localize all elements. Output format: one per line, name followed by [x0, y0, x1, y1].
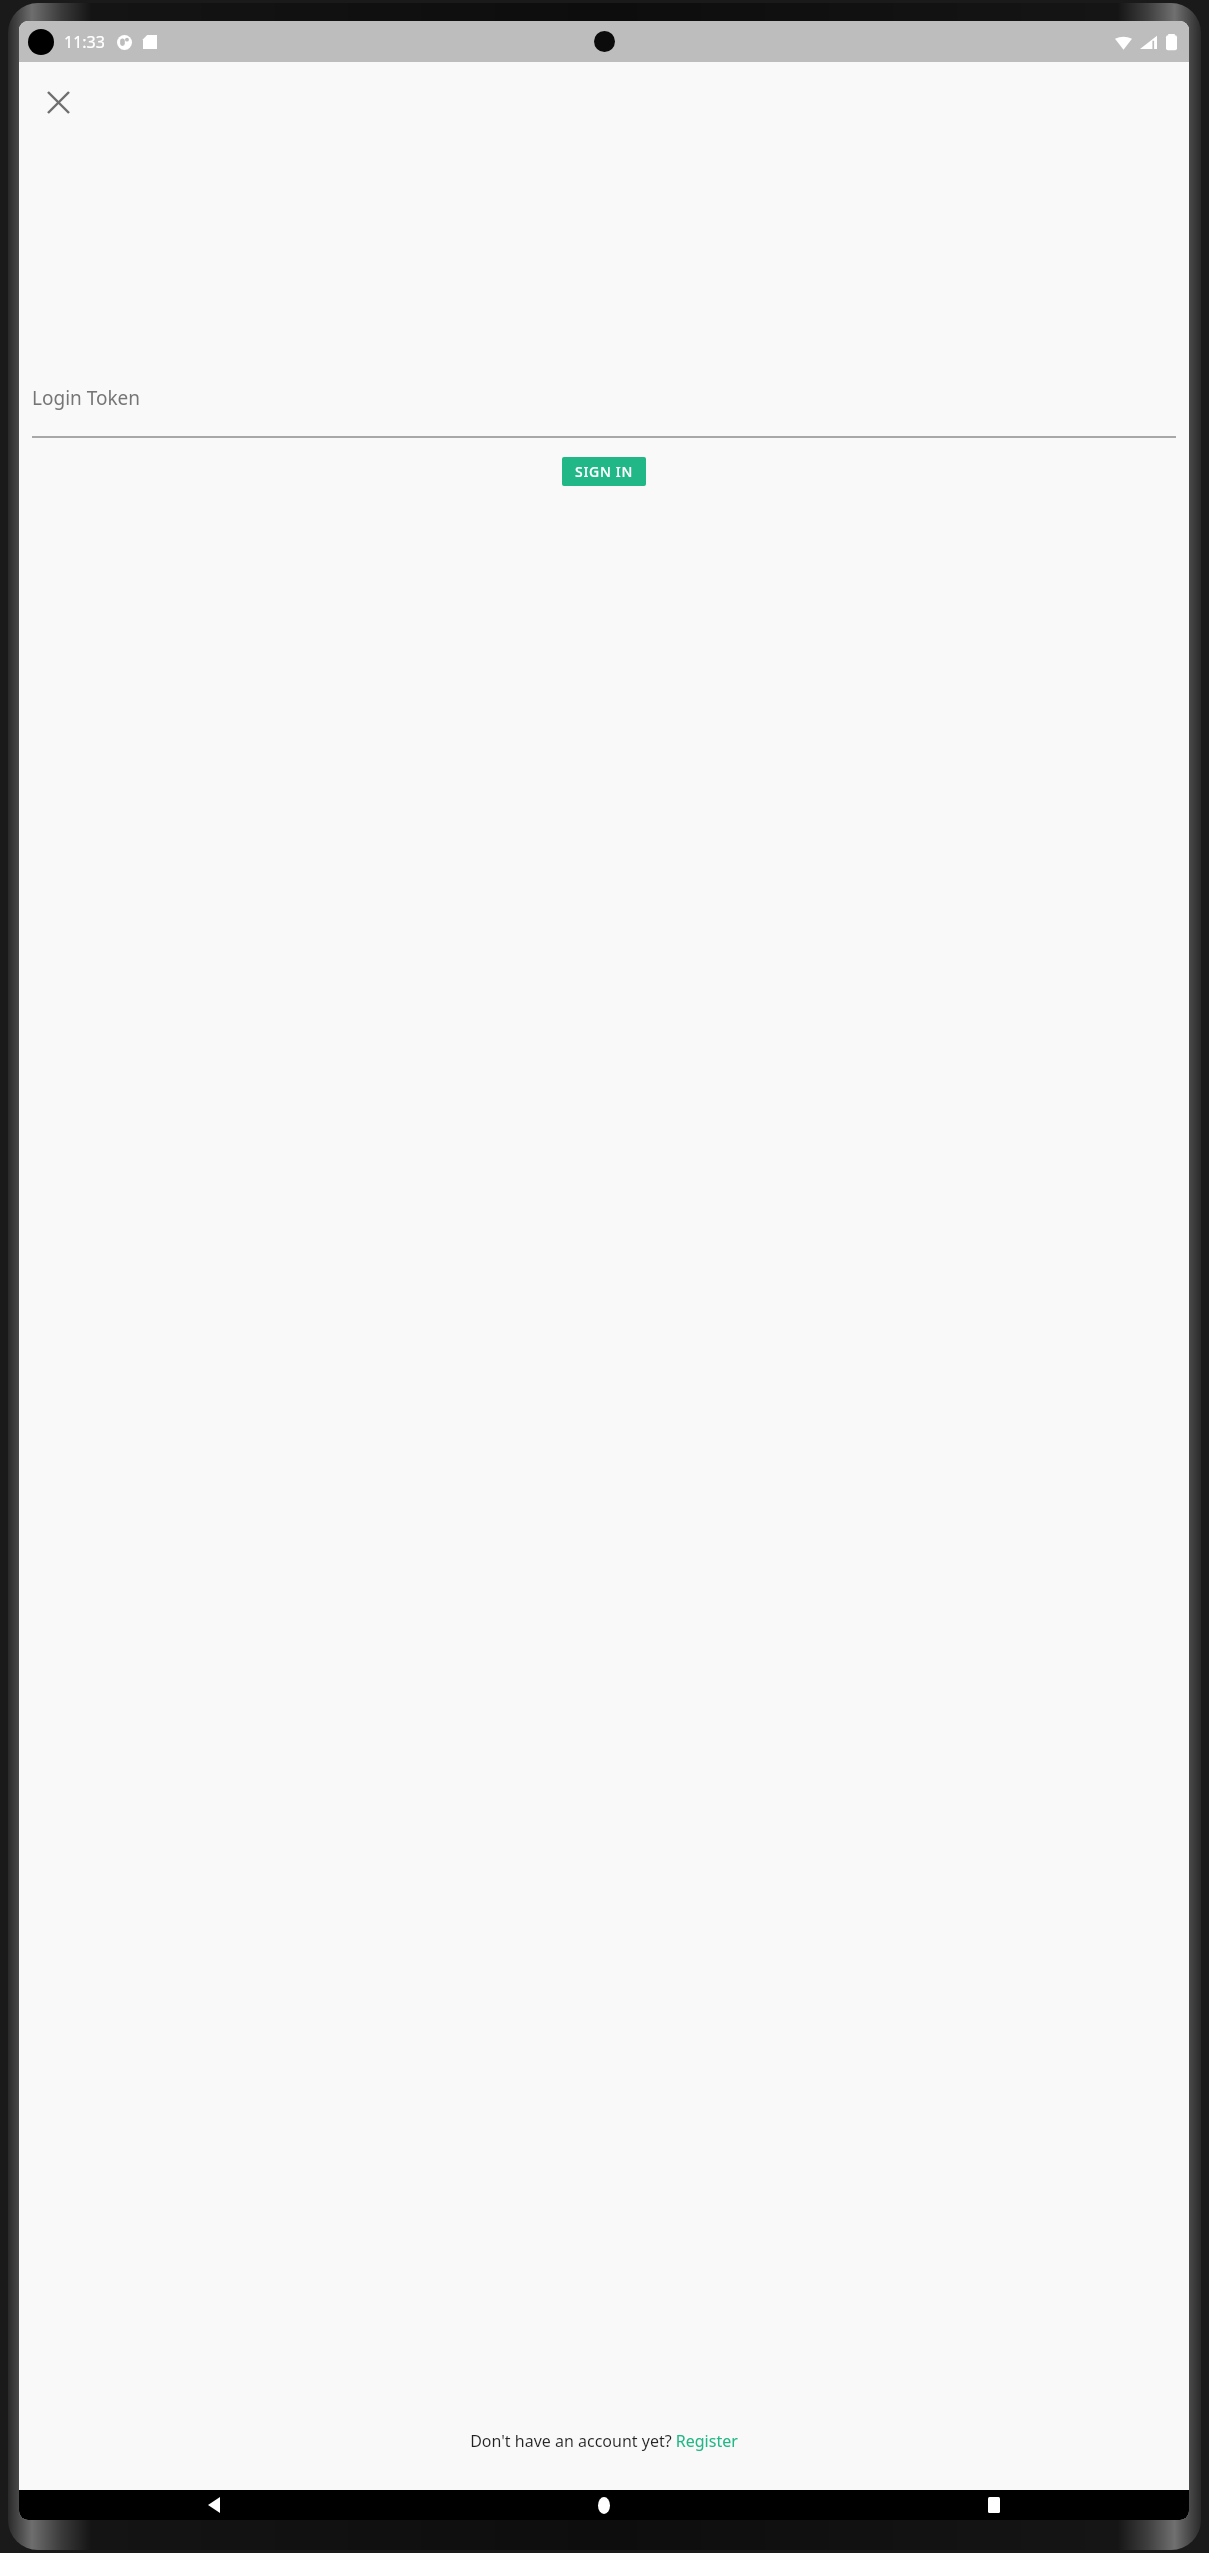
button[interactable]: Back	[19, 2490, 409, 2520]
button[interactable]: Close	[36, 80, 80, 124]
button[interactable]: Login Token	[32, 385, 1176, 438]
button[interactable]: Recent apps	[799, 2490, 1189, 2520]
staticText: 11:33	[64, 31, 105, 53]
button[interactable]: SIGN IN	[562, 457, 646, 486]
staticText: Don't have an account yet? Register	[470, 2430, 738, 2452]
button[interactable]: Home	[409, 2490, 799, 2520]
staticText: Login Token	[32, 385, 141, 411]
button[interactable]: Don't have an account yet? Register	[470, 2430, 738, 2452]
staticText: SIGN IN	[575, 462, 634, 481]
